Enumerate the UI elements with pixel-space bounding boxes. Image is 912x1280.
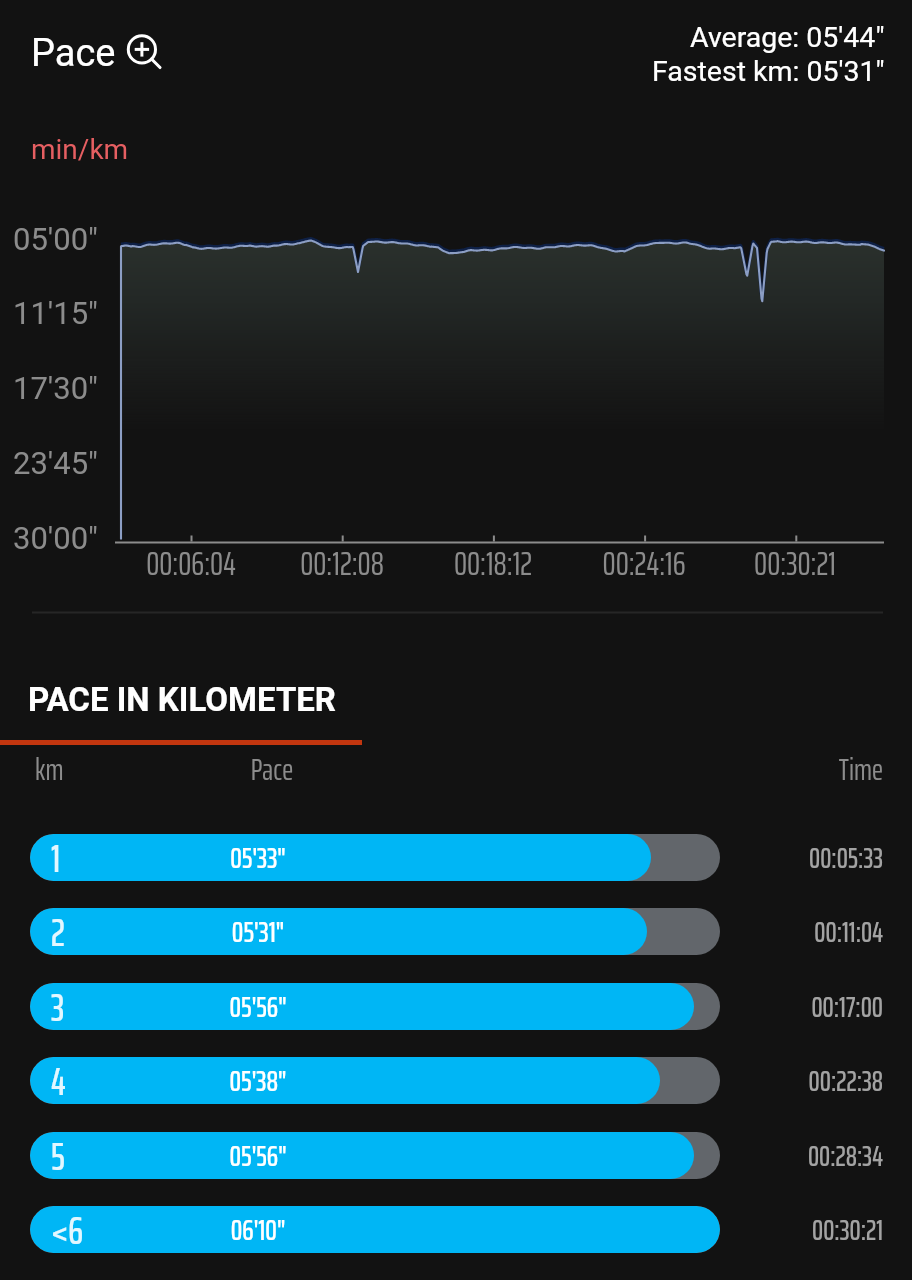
staticText: PACE IN KILOMETER (28, 680, 336, 719)
staticText: 05'00" (0, 221, 98, 257)
staticText: 00:30:21 (715, 538, 875, 590)
staticText: <6 (51, 1206, 84, 1248)
staticText: 2 (51, 908, 65, 950)
staticText: 23'45" (0, 445, 98, 481)
button[interactable]: <6 (0, 1193, 912, 1266)
staticText: 00:24:16 (564, 538, 724, 590)
button[interactable]: 5 (0, 1119, 912, 1192)
staticText: 00:17:00 (723, 985, 883, 1029)
staticText: 00:28:34 (723, 1134, 883, 1178)
staticText: 00:18:12 (413, 538, 573, 590)
staticText: 00:30:21 (723, 1208, 883, 1252)
staticText: 05'33" (168, 835, 348, 881)
staticText: 17'30" (0, 370, 98, 406)
staticText: 00:05:33 (723, 836, 883, 880)
staticText: 30'00" (0, 520, 98, 556)
staticText: Pace (31, 31, 116, 76)
staticText: 3 (51, 983, 65, 1025)
button[interactable]: 2 (0, 895, 912, 968)
staticText: 00:11:04 (723, 910, 883, 954)
button[interactable]: 4 (0, 1044, 912, 1117)
staticText: 06'10" (168, 1207, 348, 1253)
staticText: Fastest km: 05'31" (652, 55, 885, 88)
staticText: 5 (51, 1132, 65, 1174)
button[interactable]: Zoom in on pace chart (127, 31, 167, 71)
staticText: Pace (192, 746, 352, 793)
staticText: 05'31" (168, 909, 348, 955)
staticText: 1 (51, 834, 61, 876)
staticText: 05'38" (168, 1058, 348, 1104)
button[interactable]: 3 (0, 970, 912, 1043)
button[interactable]: 1 (0, 821, 912, 894)
staticText: 05'56" (168, 1133, 348, 1179)
button[interactable]: PACE IN KILOMETER (0, 656, 362, 745)
staticText: Time (723, 746, 883, 793)
staticText: 05'56" (168, 984, 348, 1030)
staticText: km (35, 746, 64, 793)
staticText: 4 (51, 1057, 66, 1099)
staticText: min/km (31, 133, 129, 166)
staticText: 11'15" (0, 295, 98, 331)
staticText: Average: 05'44" (690, 21, 885, 54)
staticText: 00:12:08 (262, 538, 422, 590)
staticText: 00:06:04 (111, 538, 271, 590)
staticText: 00:22:38 (723, 1059, 883, 1103)
